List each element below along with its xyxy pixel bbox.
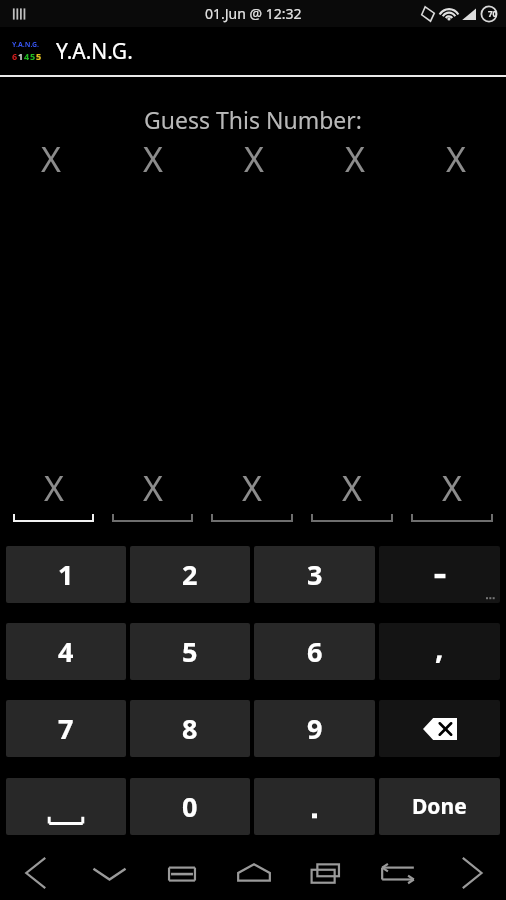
staticText: X: [345, 136, 365, 182]
button[interactable]: 3: [254, 546, 375, 603]
staticText: 5: [30, 50, 36, 62]
staticText: 7: [58, 710, 74, 747]
staticText: Guess This Number:: [0, 104, 506, 135]
button[interactable]: Forward: [434, 846, 506, 900]
staticText: 1: [18, 50, 24, 62]
button[interactable]: [254, 778, 375, 835]
button[interactable]: Done: [379, 778, 500, 835]
staticText: Y.A.N.G.: [12, 40, 40, 50]
staticText: 5: [182, 633, 198, 670]
staticText: Done: [412, 792, 467, 821]
staticText: 9: [307, 710, 323, 747]
button[interactable]: Backspace: [379, 700, 500, 757]
button[interactable]: Digit field 3: [202, 463, 302, 523]
staticText: X: [44, 465, 64, 511]
button[interactable]: Space: [6, 778, 126, 835]
staticText: 0: [182, 788, 198, 825]
staticText: Y.A.N.G.: [56, 37, 133, 66]
button[interactable]: 9: [254, 700, 375, 757]
button[interactable]: Recents: [290, 846, 362, 900]
button[interactable]: 0: [130, 778, 250, 835]
staticText: X: [143, 465, 163, 511]
button[interactable]: Digit field 4: [302, 463, 402, 523]
staticText: X: [442, 465, 462, 511]
staticText: 01.Jun @ 12:32: [205, 4, 302, 23]
button[interactable]: Digit field 5: [402, 463, 502, 523]
staticText: 6: [12, 50, 18, 62]
button[interactable]: 7: [6, 700, 126, 757]
staticText: 4: [58, 633, 74, 670]
staticText: 70: [488, 8, 498, 19]
staticText: 2: [182, 556, 198, 593]
button[interactable]: 1: [6, 546, 126, 603]
button[interactable]: Digit field 1: [4, 463, 103, 523]
staticText: X: [342, 465, 362, 511]
button[interactable]: Menu: [146, 846, 218, 900]
staticText: X: [143, 136, 163, 182]
button[interactable]: Hide keyboard: [73, 846, 146, 900]
staticText: X: [242, 465, 262, 511]
button[interactable]: 4: [6, 623, 126, 680]
staticText: 3: [307, 556, 323, 593]
button[interactable]: 8: [130, 700, 250, 757]
button[interactable]: Digit field 2: [103, 463, 202, 523]
button[interactable]: [379, 546, 500, 603]
button[interactable]: ,: [379, 623, 500, 680]
staticText: ,: [435, 627, 444, 668]
staticText: 5: [36, 50, 42, 62]
button[interactable]: Switch: [362, 846, 434, 900]
staticText: X: [41, 136, 61, 182]
button[interactable]: 5: [130, 623, 250, 680]
button[interactable]: Back: [0, 846, 73, 900]
staticText: X: [446, 136, 466, 182]
staticText: X: [244, 136, 264, 182]
staticText: 1: [58, 556, 74, 593]
staticText: 4: [24, 50, 30, 62]
button[interactable]: Home: [218, 846, 290, 900]
button[interactable]: 6: [254, 623, 375, 680]
staticText: 8: [182, 710, 198, 747]
button[interactable]: 2: [130, 546, 250, 603]
staticText: 6: [307, 633, 323, 670]
